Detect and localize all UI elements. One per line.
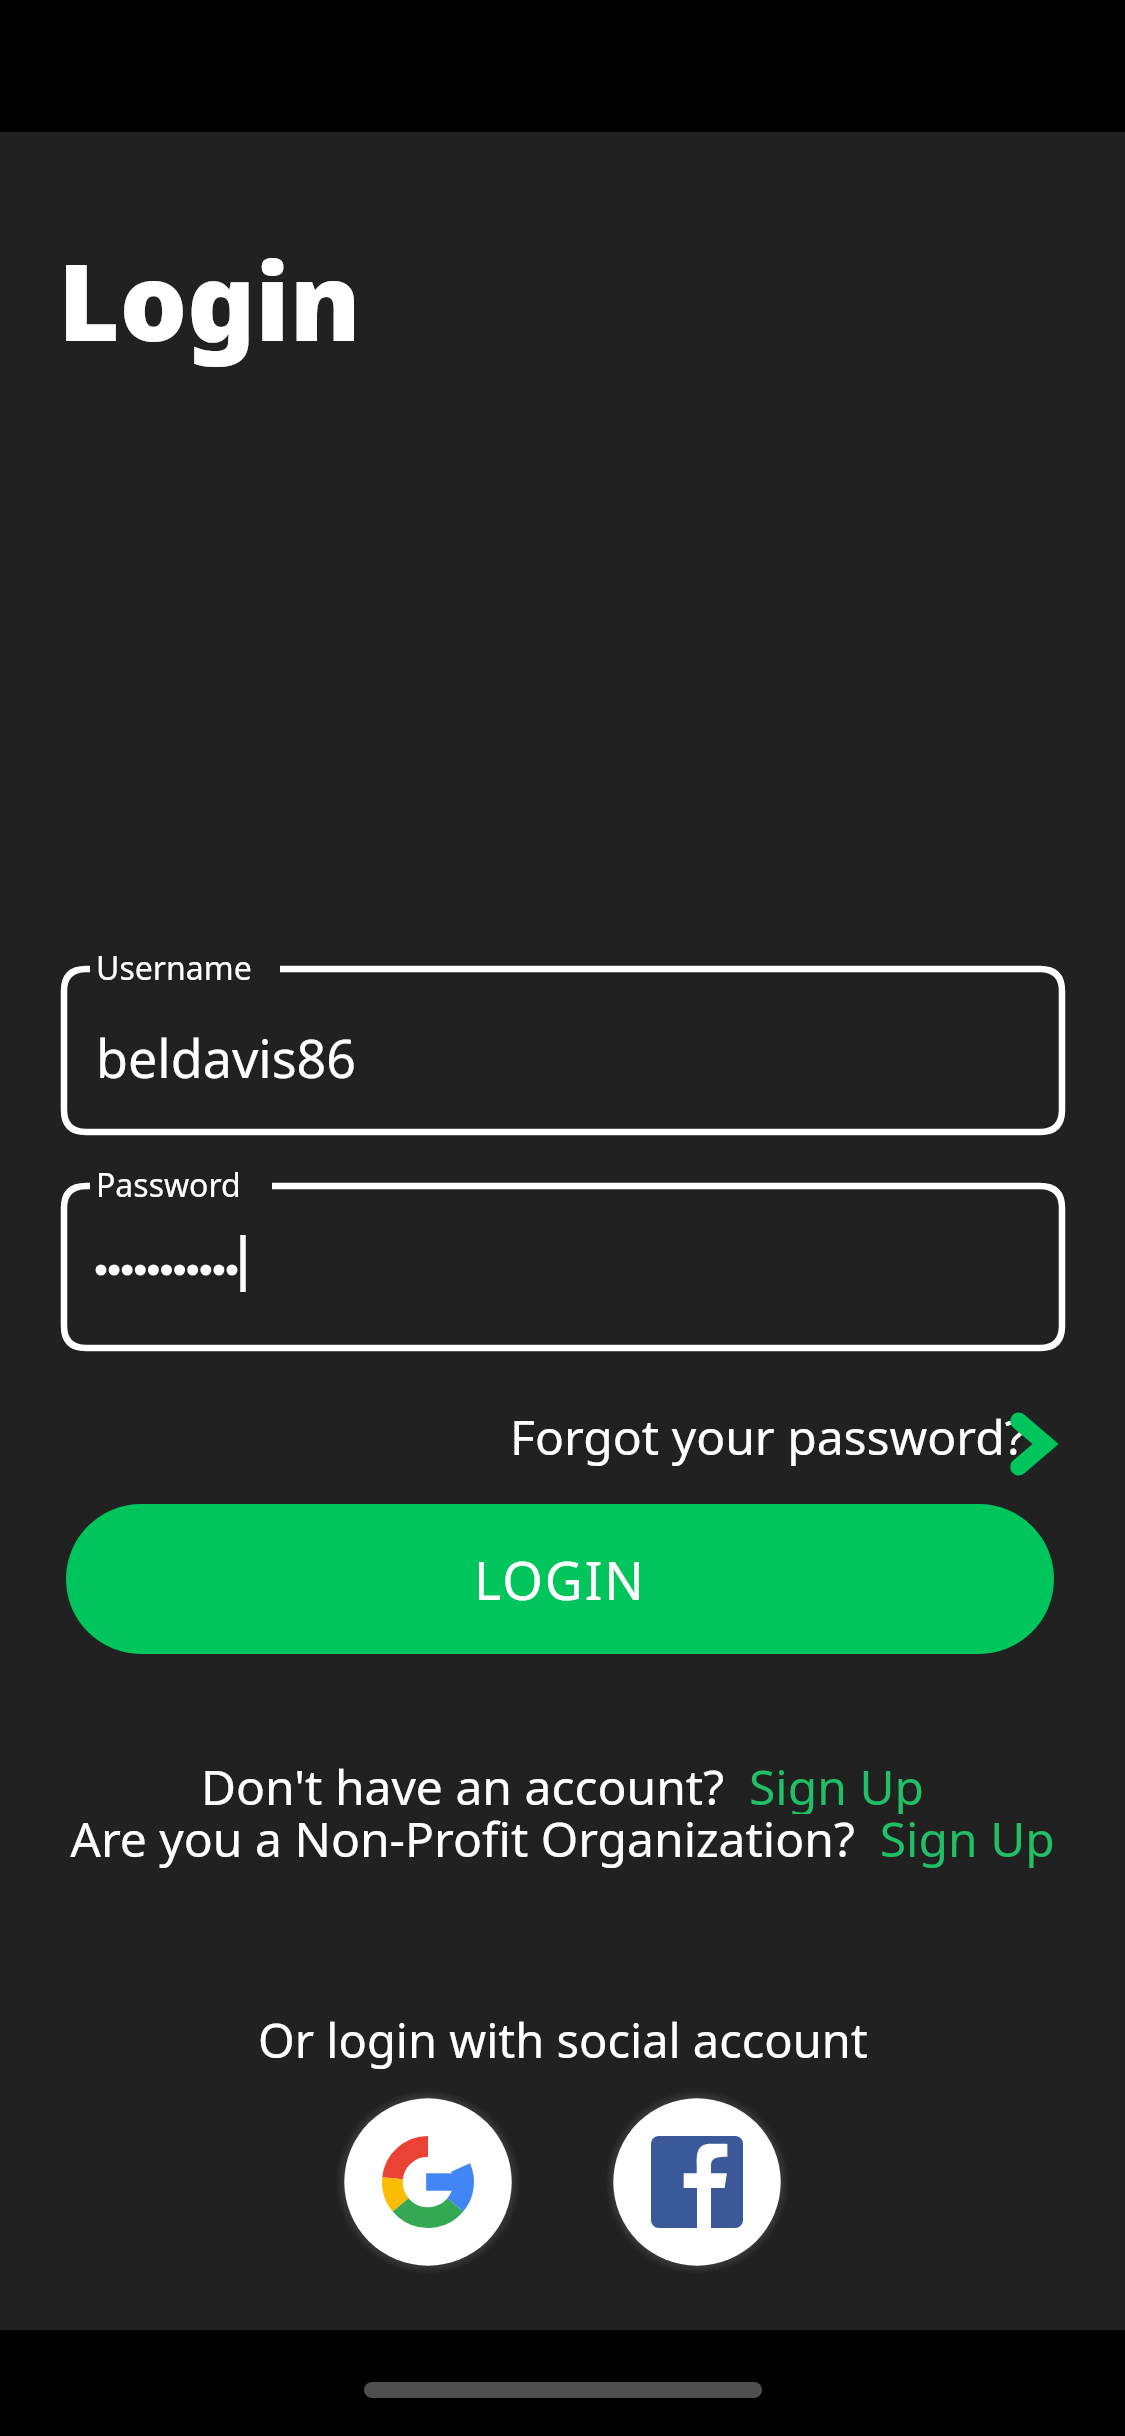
button[interactable]: Forgot your password?	[480, 1392, 1065, 1480]
other: Forgot your password	[1003, 1408, 1059, 1480]
button[interactable]	[56, 961, 1070, 1140]
staticText: Forgot your password?	[510, 1404, 1026, 1469]
button[interactable]	[56, 1178, 1070, 1356]
button[interactable]: Don't have an account? Sign Up	[0, 1754, 1125, 1814]
staticText: Don't have an account? Sign Up	[201, 1754, 924, 1814]
button[interactable]: Are you a Non-Profit Organization? Sign …	[0, 1804, 1125, 1872]
staticText: beldavis86	[96, 1022, 357, 1093]
button[interactable]: Sign in with Google	[336, 2090, 520, 2274]
staticText: Login	[58, 228, 361, 372]
button[interactable]: Sign in with Facebook	[605, 2090, 789, 2274]
staticText: Username	[96, 946, 252, 990]
staticText: Password	[96, 1163, 241, 1207]
staticText: Are you a Non-Profit Organization? Sign …	[70, 1806, 1055, 1871]
staticText: LOGIN	[474, 1544, 646, 1615]
button[interactable]: LOGIN	[66, 1504, 1054, 1654]
staticText: Or login with social account	[258, 2008, 868, 2072]
